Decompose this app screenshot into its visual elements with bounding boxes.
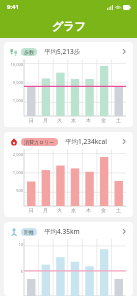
staticText: 9:41	[7, 3, 19, 11]
button[interactable]: 消費カロリー	[4, 132, 133, 217]
other: 詳細	[120, 48, 127, 55]
staticText: 日	[29, 117, 34, 123]
staticText: 月	[43, 117, 48, 123]
staticText: 10	[18, 242, 23, 247]
staticText: 月	[43, 207, 48, 213]
staticText: 距離	[24, 229, 34, 235]
staticText: 金	[101, 117, 106, 123]
staticText: 消費カロリー	[24, 139, 55, 145]
staticText: 10,000	[10, 62, 23, 67]
staticText: 500	[16, 188, 23, 193]
button[interactable]: 歩数	[4, 42, 133, 127]
staticText: 平均1,234kcal	[65, 137, 107, 146]
staticText: 土	[116, 117, 121, 123]
staticText: 歩数	[24, 49, 34, 55]
staticText: 日	[29, 207, 34, 213]
staticText: 水	[71, 207, 76, 213]
staticText: 水	[71, 117, 76, 123]
other: 詳細	[120, 228, 127, 235]
staticText: 5	[20, 269, 23, 274]
staticText: 1,000	[12, 98, 23, 103]
staticText: 木	[86, 117, 91, 123]
staticText: 火	[57, 117, 62, 123]
button[interactable]: 距離	[4, 222, 133, 296]
staticText: 平均4.35km	[44, 227, 80, 236]
staticText: 木	[86, 207, 91, 213]
staticText: 火	[57, 207, 62, 213]
other: 詳細	[120, 138, 127, 145]
staticText: 金	[101, 207, 106, 213]
staticText: 1,000	[12, 170, 23, 175]
staticText: 平均5,213歩	[44, 47, 81, 56]
staticText: 土	[116, 207, 121, 213]
staticText: 2,000	[12, 152, 23, 157]
staticText: 5,000	[12, 80, 23, 85]
staticText: グラフ	[52, 19, 86, 33]
